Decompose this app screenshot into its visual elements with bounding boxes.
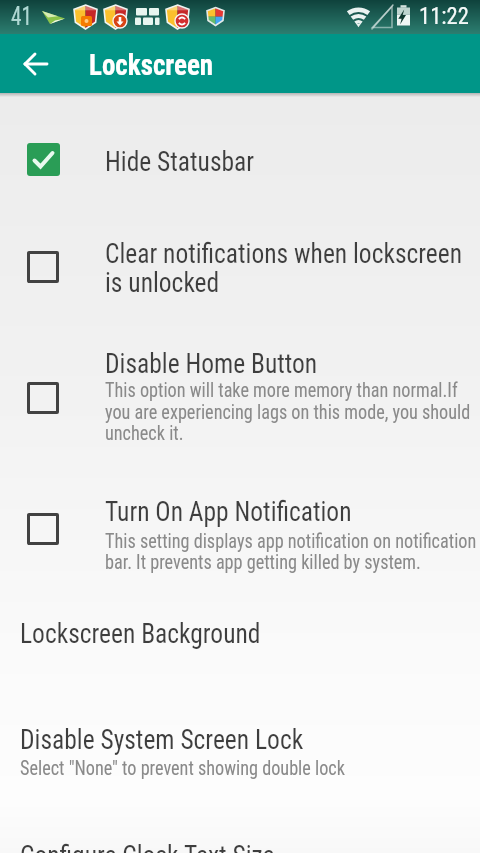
- staticText: 11:22: [419, 3, 469, 30]
- staticText: 41: [11, 2, 32, 31]
- button[interactable]: Clear notifications when lockscreen: [0, 231, 480, 302]
- staticText: This setting displays app notification o…: [105, 529, 476, 552]
- button[interactable]: Disable Home Button: [0, 340, 480, 455]
- staticText: Lockscreen Background: [20, 617, 261, 650]
- button[interactable]: Disable System Screen Lock: [0, 712, 480, 792]
- staticText: Select "None" to prevent showing double …: [20, 756, 346, 779]
- staticText: This option will take more memory than n…: [105, 378, 458, 401]
- staticText: Configure Clock Text Size: [20, 839, 275, 853]
- button[interactable]: Hide Statusbar: [0, 131, 480, 191]
- staticText: Lockscreen: [89, 48, 214, 82]
- staticText: Turn On App Notification: [105, 495, 352, 528]
- staticText: Clear notifications when lockscreen: [105, 237, 463, 270]
- staticText: Disable Home Button: [105, 347, 318, 380]
- staticText: Hide Statusbar: [105, 145, 254, 178]
- button[interactable]: Lockscreen Background: [0, 605, 480, 667]
- button[interactable]: [14, 47, 58, 81]
- staticText: Disable System Screen Lock: [20, 723, 304, 756]
- staticText: bar. It prevents app getting killed by s…: [105, 550, 422, 573]
- button[interactable]: Turn On App Notification: [0, 488, 480, 585]
- staticText: you are experiencing lags on this mode, …: [105, 400, 471, 423]
- staticText: is unlocked: [105, 266, 220, 299]
- staticText: uncheck it.: [105, 421, 184, 444]
- button[interactable]: Configure Clock Text Size: [0, 826, 480, 853]
